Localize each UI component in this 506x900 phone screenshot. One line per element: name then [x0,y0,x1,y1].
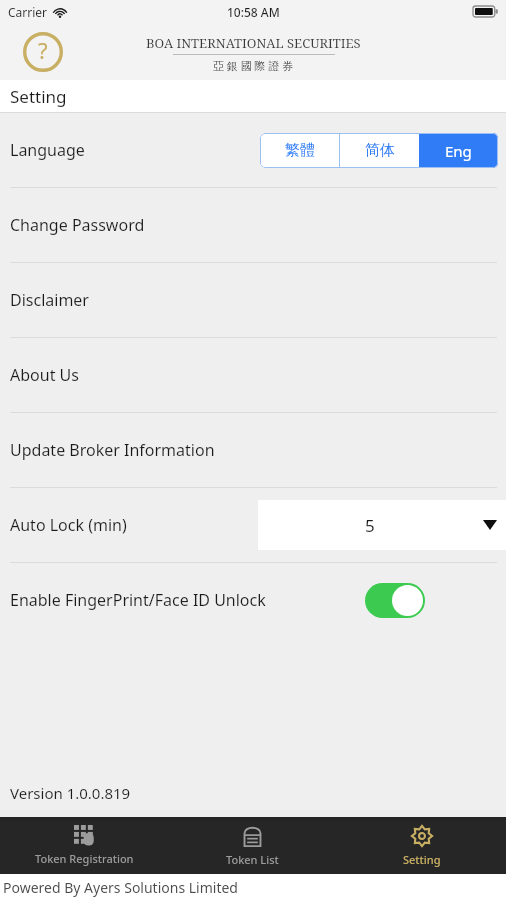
staticText: Setting [10,85,67,108]
staticText: Auto Lock (min) [10,514,127,536]
staticText: BOA INTERNATIONAL SECURITIES [146,34,361,52]
staticText: Token Registration [35,851,134,866]
staticText: 10:58 AM [227,4,280,20]
staticText: 简体 [365,141,395,160]
staticText: 亞 銀 國 際 證 券 [213,58,294,73]
staticText: Version 1.0.0.819 [10,783,131,803]
staticText: Language [10,139,85,161]
staticText: Change Password [10,214,145,236]
button[interactable]: Token List [168,817,337,874]
staticText: 5 [365,514,375,537]
button[interactable]: Auto lock minutes selector [258,500,506,550]
button[interactable]: Setting [337,817,506,874]
button[interactable]: About Us [0,338,506,412]
button[interactable]: Disclaimer [0,263,506,337]
staticText: Carrier [8,4,48,20]
staticText: Eng [445,141,472,161]
button[interactable]: 繁體 [260,133,339,168]
staticText: Update Broker Information [10,439,215,461]
staticText: Setting [403,852,441,867]
button[interactable]: 简体 [340,133,419,168]
button[interactable]: Update Broker Information [0,413,506,487]
button[interactable]: Change Password [0,188,506,262]
staticText: Disclaimer [10,289,89,311]
staticText: ? [38,35,48,65]
staticText: Enable FingerPrint/Face ID Unlock [10,589,266,611]
staticText: Powered By Ayers Solutions Limited [3,878,238,897]
staticText: 繁體 [285,141,315,160]
button[interactable]: Help [23,32,63,72]
button[interactable]: Eng [419,133,498,168]
staticText: About Us [10,364,79,386]
button[interactable]: Enable FingerPrint or Face ID Unlock [365,583,425,618]
button[interactable]: Token Registration [0,817,168,874]
staticText: Token List [226,852,279,867]
